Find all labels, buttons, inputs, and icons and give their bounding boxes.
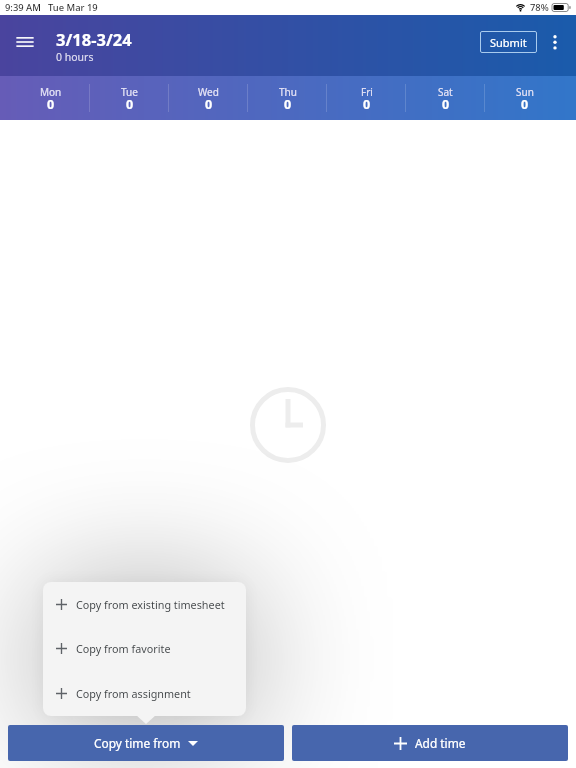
staticText: Tue	[121, 85, 138, 99]
staticText: Copy from existing timesheet	[76, 597, 225, 612]
staticText: 0	[363, 96, 371, 113]
button[interactable]: Submit	[480, 31, 537, 53]
staticText: 0	[205, 96, 213, 113]
button[interactable]: Copy from favorite	[43, 626, 246, 671]
button[interactable]: Mon	[12, 76, 90, 120]
staticText: Submit	[490, 35, 527, 50]
staticText: Sat	[438, 85, 453, 99]
button[interactable]: More options	[537, 24, 573, 60]
staticText: Copy from favorite	[76, 641, 171, 656]
button[interactable]: Copy from assignment	[43, 671, 246, 716]
staticText: Add time	[415, 735, 466, 751]
button[interactable]: Sat	[406, 76, 485, 120]
staticText: 0	[442, 96, 450, 113]
button[interactable]: Menu	[6, 23, 44, 61]
staticText: Thu	[279, 85, 297, 99]
staticText: 0 hours	[56, 50, 94, 64]
staticText: Tue Mar 19	[48, 1, 98, 14]
staticText: 0	[47, 96, 55, 113]
button[interactable]: Wed	[169, 76, 248, 120]
staticText: 3/18-3/24	[56, 28, 132, 50]
staticText: 78%	[530, 1, 549, 14]
button[interactable]: Tue	[90, 76, 169, 120]
staticText: Wed	[198, 85, 219, 99]
staticText: Mon	[40, 85, 62, 99]
button[interactable]: Sun	[485, 76, 564, 120]
button[interactable]: Thu	[248, 76, 327, 120]
button[interactable]: Copy from existing timesheet	[43, 582, 246, 626]
staticText: Copy from assignment	[76, 686, 191, 701]
button[interactable]: Fri	[327, 76, 406, 120]
staticText: Sun	[516, 85, 534, 99]
button[interactable]: Copy time from	[8, 725, 284, 761]
staticText: Fri	[361, 85, 373, 99]
button[interactable]: Add time	[292, 725, 568, 761]
staticText: 0	[521, 96, 529, 113]
staticText: 9:39 AM	[5, 1, 41, 14]
staticText: 0	[284, 96, 292, 113]
staticText: Copy time from	[94, 735, 181, 751]
staticText: 0	[126, 96, 134, 113]
